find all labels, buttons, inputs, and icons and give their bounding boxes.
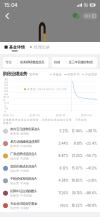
staticText: 业绩数据来自基金定期报告，同类排名来自银河证券，不构成投资建议 [3,118,87,125]
staticText: 10.00 [3,95,9,101]
button[interactable]: More [83,13,97,19]
staticText: 债券型 低风险 [10,132,29,135]
staticText: 稳健 [54,60,60,64]
staticText: 同类平均 [67,73,79,76]
staticText: 混合型 中风险 [10,157,29,160]
staticText: -10.0 [4,107,9,113]
staticText: 2024-03 [3,114,13,117]
staticText: 5G [83,3,88,7]
staticText: 混合型 中风险 [10,206,29,210]
staticText: 广发趋势优选混合A [10,152,36,156]
staticText: 混合型 中风险 [10,169,29,173]
staticText: 兴全合润混合型基金 [10,201,37,206]
button[interactable]: 富国天惠成长混合A [0,162,100,175]
staticText: 21.33% [72,154,83,158]
staticText: +38.1% [86,129,97,133]
button[interactable]: 经理访谈 [29,42,50,53]
staticText: 2024-09 [81,114,91,117]
button[interactable]: Back [2,11,12,21]
staticText: 沪深300 [85,73,97,76]
staticText: 18.22% [72,204,83,207]
staticText: 30.15% [72,191,83,195]
staticText: +55.7% [85,154,97,158]
staticText: 9.81% [74,142,83,145]
staticText: 专业 [5,60,11,64]
staticText: +27.8% [86,179,97,182]
staticText: 10.92% [72,179,83,182]
staticText: 指数型 中高风险 [10,194,32,197]
staticText: 2024-05 [29,114,39,117]
staticText: 6.12% [60,167,69,170]
staticText: 20.00 [4,90,9,96]
staticText: 4.38% [59,179,69,182]
staticText: 基金详情 [9,45,25,50]
staticText: 南方宝元债券型基金A [10,127,39,131]
button[interactable]: Chat [72,12,80,19]
staticText: 中欧价值发现混合A [10,177,36,181]
staticText: 12.40% [72,129,83,133]
staticText: 15.07% [72,167,83,170]
staticText: 3.44% [59,142,69,145]
button[interactable]: 稳健 [52,57,97,67]
staticText: 近半年 [29,72,38,76]
staticText: 2024-07 [56,114,65,117]
staticText: 富国天惠成长混合A [10,164,36,168]
staticText: 30.00 [4,84,9,90]
button[interactable]: 基金详情 [4,42,25,53]
staticText: 近三年回撤控制优 [69,60,93,64]
button[interactable]: 兴全合润混合型基金 [0,199,100,212]
staticText: 7.65% [60,204,69,207]
staticText: +41.3% [86,167,97,170]
staticText: 5.21% [60,129,69,133]
staticText: 混合型 中风险 [10,182,29,185]
staticText: +46.9% [85,204,97,207]
staticText: 易方达稳健收益债券B [10,139,39,144]
staticText: 40.00 [4,78,9,84]
staticText: 11.20% [59,191,69,195]
button[interactable]: 招商中证白酒指数A [0,187,100,199]
staticText: 机构调研覆盖度高 [20,60,44,64]
staticText: 15:04 [4,2,18,8]
staticText: +22.4% [85,142,97,145]
staticText: 债券型 中低风险 [10,144,32,148]
button[interactable]: 广发趋势优选混合A [0,150,100,162]
staticText: 本基金 [53,73,62,76]
staticText: 经理访谈 [34,45,50,50]
staticText: 招商中证白酒指数A [10,189,36,193]
button[interactable]: 南方宝元债券型基金A [0,125,100,137]
staticText: +88.6% [85,191,97,195]
button[interactable]: 易方达稳健收益债券B [0,137,100,150]
button[interactable]: 专业 [3,57,48,67]
staticText: 阶段业绩走势 [3,71,27,76]
staticText: 0.00 [4,101,9,107]
staticText: 8.97% [59,154,69,158]
button[interactable]: 中欧价值发现混合A [0,175,100,187]
staticText: 本基金 2024-08-12 +13.21% [27,88,66,91]
